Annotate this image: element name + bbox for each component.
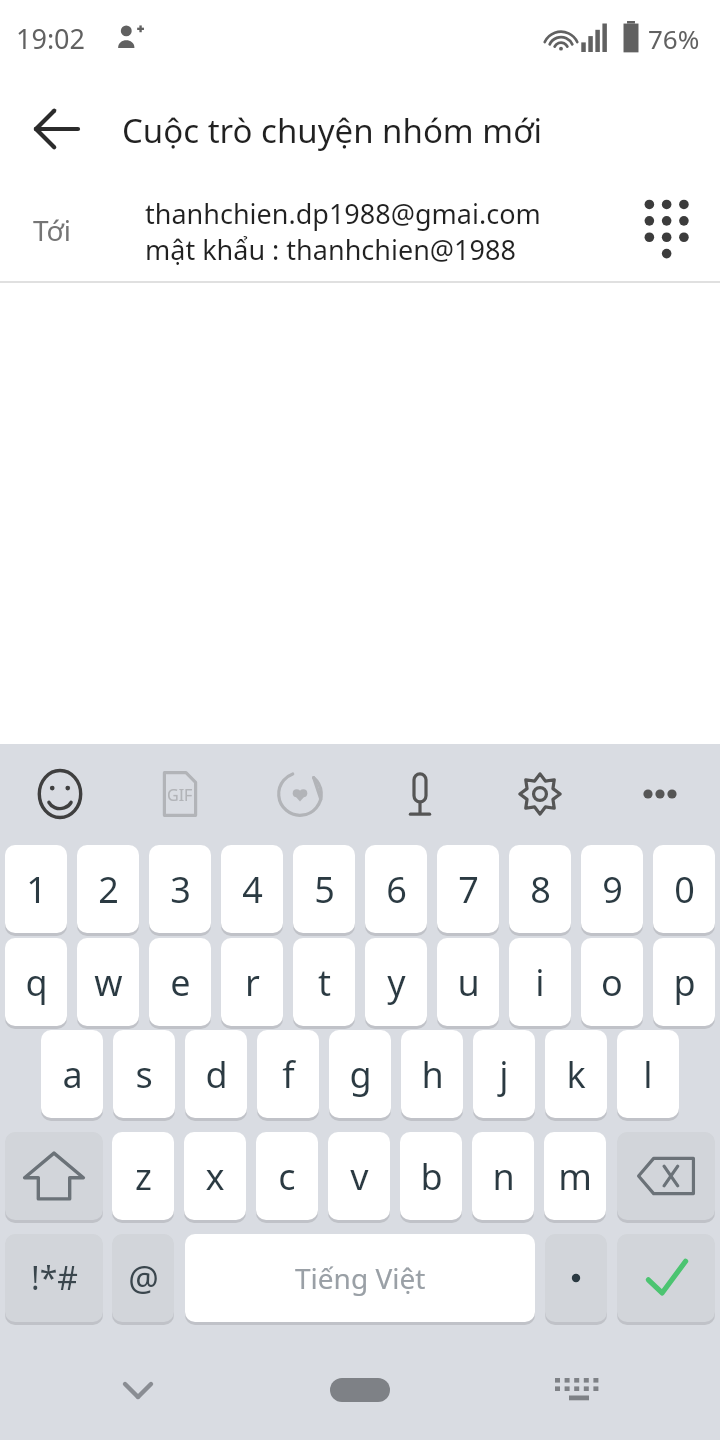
button[interactable]: Tới xyxy=(0,175,720,281)
button[interactable]: n xyxy=(472,1132,534,1220)
staticText: q xyxy=(25,958,48,1007)
staticText: a xyxy=(62,1050,83,1099)
button[interactable]: d xyxy=(185,1030,247,1118)
staticText: 8 xyxy=(530,865,551,914)
staticText: x xyxy=(205,1152,225,1201)
button[interactable]: l xyxy=(617,1030,679,1118)
staticText: 5 xyxy=(314,865,335,914)
staticText: GIF xyxy=(167,784,193,806)
staticText: Tiếng Việt xyxy=(295,1259,426,1297)
button[interactable]: 0 xyxy=(653,845,715,933)
staticText: 9 xyxy=(602,865,623,914)
staticText: m xyxy=(558,1152,592,1201)
staticText: p xyxy=(673,958,696,1007)
button[interactable]: Sticker xyxy=(270,766,330,822)
button[interactable]: u xyxy=(437,938,499,1026)
staticText: Tới xyxy=(33,211,72,249)
staticText: i xyxy=(535,958,545,1007)
button[interactable]: @ xyxy=(112,1234,174,1322)
button[interactable]: e xyxy=(149,938,211,1026)
button[interactable]: More options xyxy=(630,766,690,822)
button[interactable]: 1 xyxy=(5,845,67,933)
button[interactable]: h xyxy=(401,1030,463,1118)
staticText: w xyxy=(94,958,123,1007)
button[interactable]: Shift xyxy=(5,1132,103,1220)
staticText: e xyxy=(170,958,191,1007)
button[interactable]: Period xyxy=(545,1234,607,1322)
staticText: r xyxy=(245,958,260,1007)
staticText: 19:02 xyxy=(16,20,86,57)
button[interactable]: 7 xyxy=(437,845,499,933)
staticText: !*# xyxy=(31,1256,78,1300)
button[interactable]: i xyxy=(509,938,571,1026)
button[interactable]: Backspace xyxy=(617,1132,715,1220)
button[interactable]: Change keyboard xyxy=(545,1362,611,1418)
button[interactable]: q xyxy=(5,938,67,1026)
button[interactable]: v xyxy=(328,1132,390,1220)
staticText: o xyxy=(601,958,623,1007)
staticText: Cuộc trò chuyện nhóm mới xyxy=(122,108,542,153)
button[interactable]: r xyxy=(221,938,283,1026)
staticText: l xyxy=(643,1050,653,1099)
staticText: j xyxy=(499,1050,509,1099)
button[interactable]: 3 xyxy=(149,845,211,933)
staticText: n xyxy=(492,1152,515,1201)
staticText: g xyxy=(349,1050,372,1099)
button[interactable]: a xyxy=(41,1030,103,1118)
button[interactable]: Back xyxy=(22,94,92,164)
staticText: h xyxy=(421,1050,444,1099)
button[interactable]: m xyxy=(544,1132,606,1220)
staticText: s xyxy=(135,1050,153,1099)
button[interactable]: 4 xyxy=(221,845,283,933)
button[interactable]: j xyxy=(473,1030,535,1118)
button[interactable]: 8 xyxy=(509,845,571,933)
button[interactable]: 5 xyxy=(293,845,355,933)
button[interactable]: g xyxy=(329,1030,391,1118)
button[interactable]: f xyxy=(257,1030,319,1118)
staticText: v xyxy=(350,1152,369,1201)
button[interactable]: w xyxy=(77,938,139,1026)
staticText: u xyxy=(457,958,480,1007)
button[interactable]: 2 xyxy=(77,845,139,933)
button[interactable]: o xyxy=(581,938,643,1026)
staticText: mật khẩu : thanhchien@1988 xyxy=(145,231,516,268)
button[interactable]: Dialpad xyxy=(634,192,698,270)
staticText: 1 xyxy=(26,865,47,914)
staticText: thanhchien.dp1988@gmai.com xyxy=(145,195,541,232)
button[interactable]: Home xyxy=(330,1378,390,1402)
button[interactable]: Settings xyxy=(510,766,570,822)
button[interactable]: Voice input xyxy=(390,766,450,822)
button[interactable]: GIF xyxy=(150,766,210,822)
staticText: 3 xyxy=(170,865,191,914)
button[interactable]: b xyxy=(400,1132,462,1220)
button[interactable]: 9 xyxy=(581,845,643,933)
staticText: y xyxy=(387,958,406,1007)
staticText: 76% xyxy=(648,21,700,56)
staticText: 7 xyxy=(458,865,479,914)
button[interactable]: y xyxy=(365,938,427,1026)
button[interactable]: t xyxy=(293,938,355,1026)
staticText: b xyxy=(420,1152,443,1201)
staticText: d xyxy=(205,1050,228,1099)
staticText: 0 xyxy=(674,865,695,914)
button[interactable]: Tiếng Việt xyxy=(185,1234,535,1322)
button[interactable]: z xyxy=(112,1132,174,1220)
staticText: 2 xyxy=(98,865,119,914)
staticText: z xyxy=(135,1152,152,1201)
button[interactable]: Enter xyxy=(617,1234,715,1322)
button[interactable]: s xyxy=(113,1030,175,1118)
button[interactable]: x xyxy=(184,1132,246,1220)
staticText: 6 xyxy=(386,865,407,914)
button[interactable]: Hide keyboard xyxy=(105,1362,171,1418)
button[interactable]: !*# xyxy=(5,1234,103,1322)
staticText: c xyxy=(278,1152,296,1201)
button[interactable]: k xyxy=(545,1030,607,1118)
button[interactable]: c xyxy=(256,1132,318,1220)
staticText: f xyxy=(282,1050,295,1099)
staticText: k xyxy=(566,1050,586,1099)
button[interactable]: Emoji xyxy=(28,766,92,822)
staticText: @ xyxy=(128,1255,159,1301)
button[interactable]: 6 xyxy=(365,845,427,933)
button[interactable]: p xyxy=(653,938,715,1026)
staticText: 4 xyxy=(242,865,263,914)
